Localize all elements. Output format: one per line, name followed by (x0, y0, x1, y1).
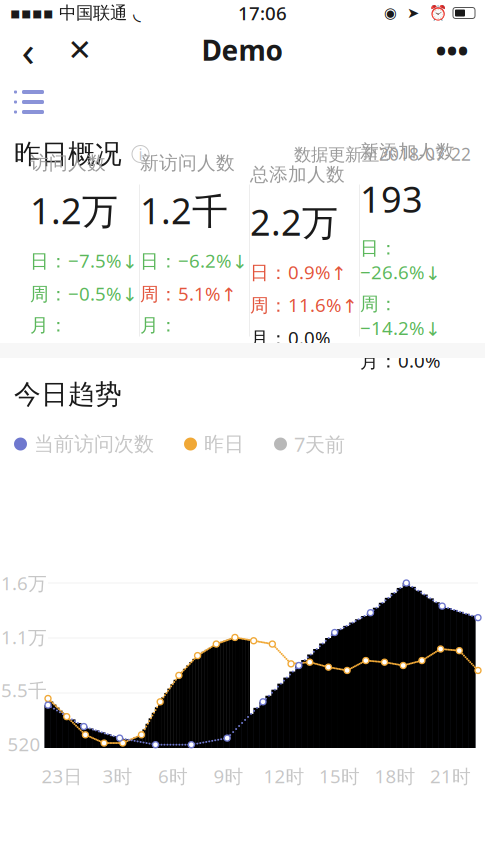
staticText: ‹ (21, 22, 34, 78)
staticText: 月：0.0% (360, 348, 441, 373)
staticText: 5.5千 (1, 678, 47, 702)
staticText: 周：−0.5%↓ (30, 281, 138, 306)
button[interactable]: Menu (0, 78, 58, 126)
staticText: 今日趋势 (14, 378, 122, 411)
button[interactable]: Info (132, 145, 149, 162)
staticText: 日：−7.5%↓ (30, 248, 138, 273)
staticText: 1.1万 (1, 625, 47, 649)
staticText: 月：0.0% (250, 325, 331, 350)
staticText: 总添加人数 (250, 163, 345, 186)
staticText: 520 (7, 732, 40, 756)
staticText: 21时 (430, 764, 471, 788)
staticText: 15时 (319, 764, 360, 788)
button[interactable]: Close (58, 28, 102, 72)
staticText: 23日 (41, 764, 82, 788)
staticText: 3时 (102, 764, 132, 788)
staticText: 日：−26.6%↓ (360, 237, 441, 284)
staticText: 1.2千 (140, 186, 228, 234)
staticText: i (138, 143, 142, 165)
staticText: 193 (360, 175, 423, 223)
staticText: 1.2万 (30, 186, 118, 234)
staticText: 7天前 (294, 431, 345, 457)
staticText: ✕ (67, 33, 92, 67)
staticText: 数据更新至2018-07-22 (294, 142, 471, 165)
staticText: ◉ ➤ ⏰ (384, 5, 447, 21)
staticText: 新添加人数 (360, 140, 455, 163)
staticText: 昨日概况 (14, 138, 122, 170)
staticText: 日：0.9%↑ (250, 260, 347, 284)
staticText: 周：5.1%↑ (140, 281, 237, 306)
staticText: 中国联通 (59, 2, 127, 24)
staticText: 9时 (213, 764, 243, 788)
staticText: 2.2万 (250, 198, 338, 246)
button[interactable]: More (425, 28, 479, 72)
staticText: 新访问人数 (140, 151, 235, 174)
staticText: 18时 (374, 764, 415, 788)
staticText: ••• (435, 30, 468, 69)
button[interactable]: Back (6, 28, 50, 72)
staticText: 月：−23.8%↓ (30, 314, 111, 361)
staticText: 周：−14.2%↓ (360, 292, 441, 340)
staticText: 1.6万 (1, 571, 47, 595)
staticText: 12时 (263, 764, 304, 788)
staticText: Demo (201, 31, 283, 69)
staticText: 访问人数 (30, 151, 106, 174)
staticText: 昨日 (204, 432, 244, 456)
staticText: ▪▪▪▪ (10, 4, 54, 22)
staticText: 6时 (158, 764, 188, 788)
staticText: 月：−54.9%↓ (140, 314, 221, 361)
staticText: 日：−6.2%↓ (140, 248, 248, 273)
staticText: 当前访问次数 (34, 432, 154, 456)
staticText: 17:06 (238, 1, 287, 25)
staticText: ◟ (133, 2, 141, 24)
staticText: 周：11.6%↑ (250, 292, 358, 317)
